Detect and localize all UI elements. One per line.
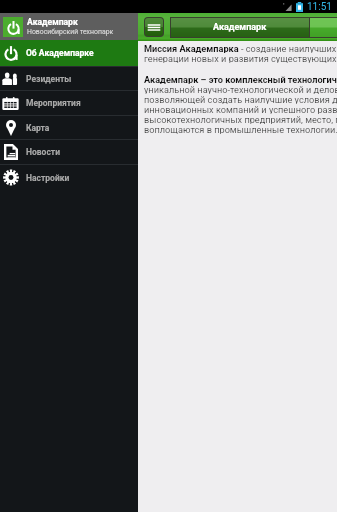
- button[interactable]: Новости: [0, 140, 138, 164]
- staticText: генерации новых и развития существующих …: [144, 53, 337, 63]
- staticText: Резиденты: [26, 74, 72, 84]
- staticText: высокотехнологичных предприятий, место, …: [144, 114, 337, 124]
- staticText: Настройки: [26, 173, 70, 183]
- staticText: Академпарк: [213, 22, 267, 33]
- staticText: Новости: [26, 147, 60, 157]
- button[interactable]: Настройки: [0, 165, 138, 190]
- staticText: Миссия Академпарка - создание наилучших …: [144, 43, 337, 53]
- staticText: воплощаются в промышленные технологии.: [144, 124, 337, 134]
- staticText: инновационных компаний и успешного разви…: [144, 104, 337, 114]
- staticText: Академпарк: [27, 17, 78, 27]
- button[interactable]: [310, 18, 337, 37]
- staticText: Карта: [26, 123, 50, 133]
- staticText: 11:51: [307, 1, 332, 13]
- staticText: позволяющей создать наилучшие условия дл…: [144, 94, 337, 104]
- button[interactable]: Об Академпарке: [0, 40, 138, 66]
- button[interactable]: Академпарк: [171, 18, 309, 37]
- staticText: Новосибирский технопарк: [27, 28, 114, 36]
- staticText: Мероприятия: [26, 98, 81, 108]
- button[interactable]: Карта: [0, 116, 138, 139]
- button[interactable]: Резиденты: [0, 67, 138, 90]
- staticText: Академпарк – это комплексный технологиче…: [144, 74, 337, 84]
- staticText: уникальной научно-технологической и дело…: [144, 84, 337, 94]
- button[interactable]: Open navigation drawer: [145, 18, 163, 36]
- button[interactable]: Мероприятия: [0, 91, 138, 115]
- staticText: Об Академпарке: [26, 48, 94, 58]
